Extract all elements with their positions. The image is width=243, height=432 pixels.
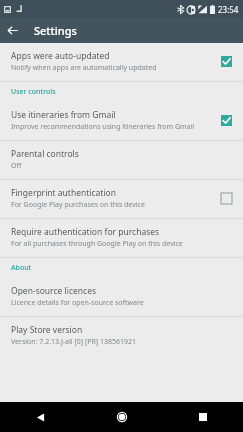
staticText: About <box>11 263 32 273</box>
staticText: Require authentication for purchases <box>11 226 160 238</box>
button[interactable]: Play Store version <box>0 317 243 355</box>
staticText: Parental controls <box>11 148 79 160</box>
button[interactable]: Checked <box>217 52 235 70</box>
button[interactable]: Use itineraries from Gmail <box>0 102 243 140</box>
staticText: Settings <box>34 23 77 38</box>
button[interactable]: Back <box>0 402 81 432</box>
staticText: Play Store version <box>11 324 83 336</box>
button[interactable]: Unchecked <box>217 189 235 207</box>
staticText: For Google Play purchases on this device <box>11 200 145 210</box>
staticText: Use itineraries from Gmail <box>11 109 116 121</box>
staticText: Fingerprint authentication <box>11 187 117 199</box>
staticText: Notify when apps are automatically updat… <box>11 63 157 73</box>
staticText: For all purchases through Google Play on… <box>11 239 183 249</box>
staticText: 23:54 <box>218 4 239 15</box>
button[interactable]: Back <box>0 18 25 43</box>
staticText: User controls <box>11 87 56 97</box>
staticText: Version: 7.2.13.J-all [0] [PR] 138561921 <box>11 337 136 347</box>
button[interactable]: Fingerprint authentication <box>0 180 243 218</box>
button[interactable]: Parental controls <box>0 141 243 179</box>
staticText: Improve recommendations using itinerarie… <box>11 122 195 132</box>
button[interactable]: Open-source licences <box>0 278 243 316</box>
staticText: Apps were auto-updated <box>11 50 110 62</box>
button[interactable]: Checked <box>217 111 235 129</box>
button[interactable]: Home <box>81 402 162 432</box>
button[interactable]: Require authentication for purchases <box>0 219 243 257</box>
button[interactable]: Apps were auto-updated <box>0 43 243 81</box>
button[interactable]: Recent apps <box>162 402 243 432</box>
staticText: Open-source licences <box>11 285 97 297</box>
staticText: Licence details for open-source software <box>11 298 144 308</box>
staticText: Off <box>11 161 22 171</box>
